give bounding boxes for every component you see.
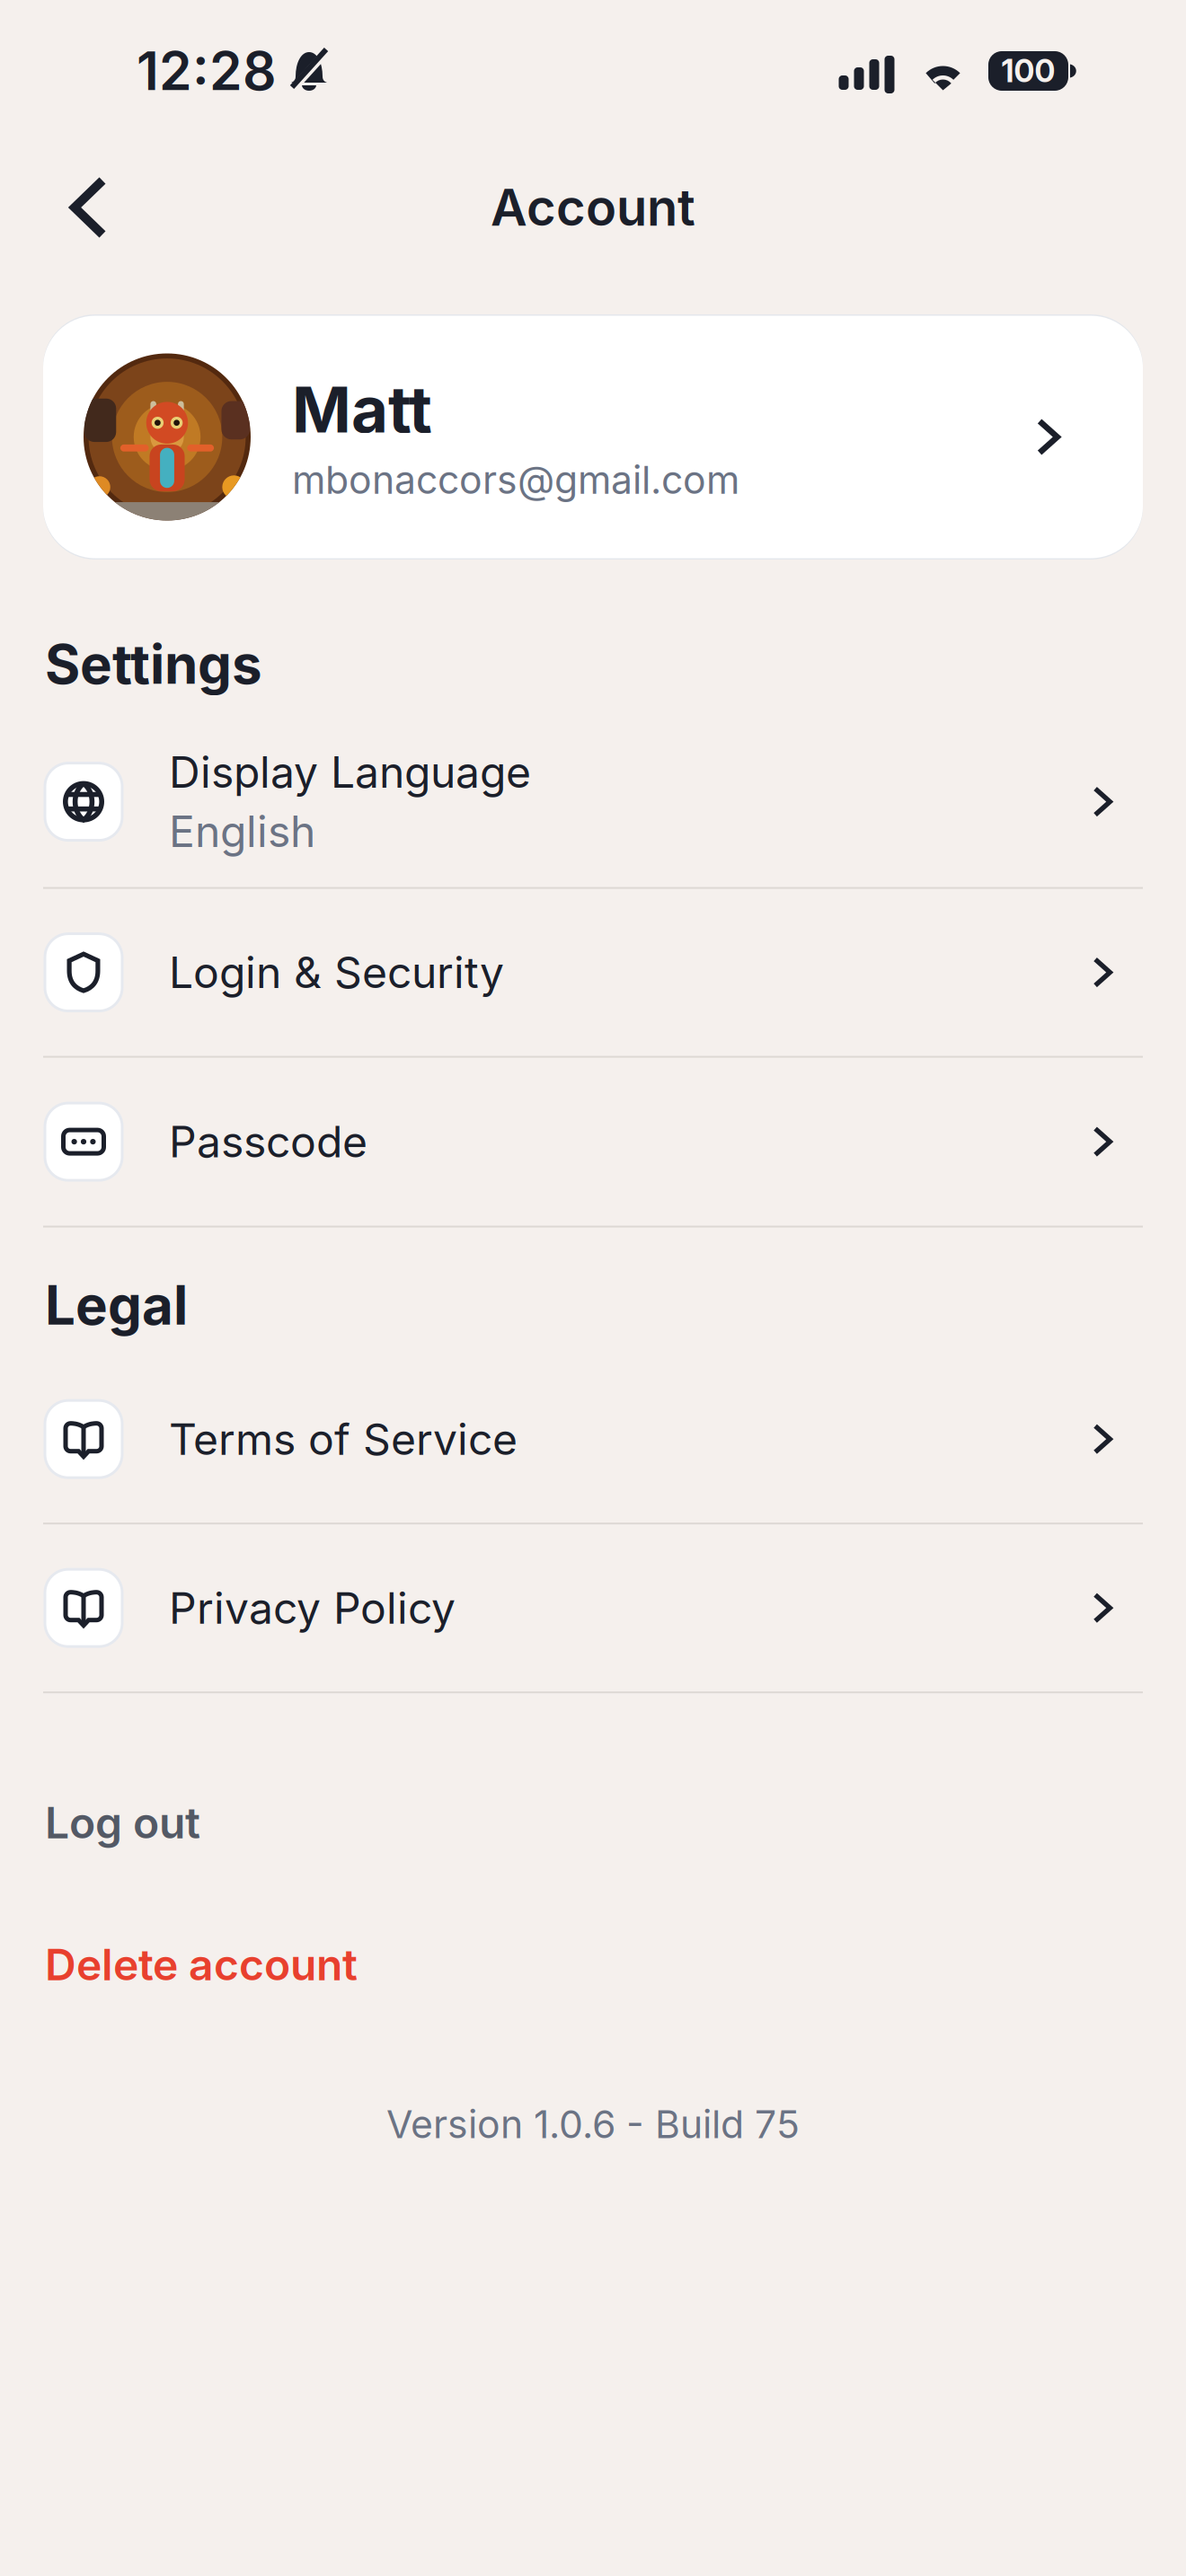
staticText: Delete account bbox=[45, 1938, 358, 1991]
button[interactable]: Back bbox=[41, 153, 136, 262]
staticText: Log out bbox=[45, 1797, 200, 1849]
button[interactable]: Login & Security bbox=[0, 889, 1186, 1056]
staticText: Display Language bbox=[169, 746, 531, 798]
staticText: mbonaccors@gmail.com bbox=[292, 457, 739, 503]
staticText: Account bbox=[491, 177, 695, 238]
staticText: Settings bbox=[45, 631, 262, 697]
staticText: Matt bbox=[292, 371, 432, 448]
button[interactable]: Display Language bbox=[0, 716, 1186, 887]
button[interactable]: Matt bbox=[43, 314, 1143, 560]
button[interactable]: Log out bbox=[0, 1769, 1186, 1876]
button[interactable]: Terms of Service bbox=[0, 1356, 1186, 1523]
button[interactable]: Delete account bbox=[0, 1911, 1186, 2018]
staticText: Privacy Policy bbox=[169, 1582, 456, 1634]
staticText: Version 1.0.6 - Build 75 bbox=[386, 2101, 800, 2147]
staticText: 12:28 bbox=[137, 39, 277, 103]
staticText: Legal bbox=[45, 1272, 188, 1338]
staticText: Passcode bbox=[169, 1116, 367, 1168]
button[interactable]: Privacy Policy bbox=[0, 1524, 1186, 1691]
staticText: English bbox=[169, 805, 315, 857]
staticText: Login & Security bbox=[169, 946, 504, 999]
staticText: 100 bbox=[1001, 52, 1055, 90]
button[interactable]: Passcode bbox=[0, 1058, 1186, 1226]
staticText: Terms of Service bbox=[169, 1413, 518, 1465]
